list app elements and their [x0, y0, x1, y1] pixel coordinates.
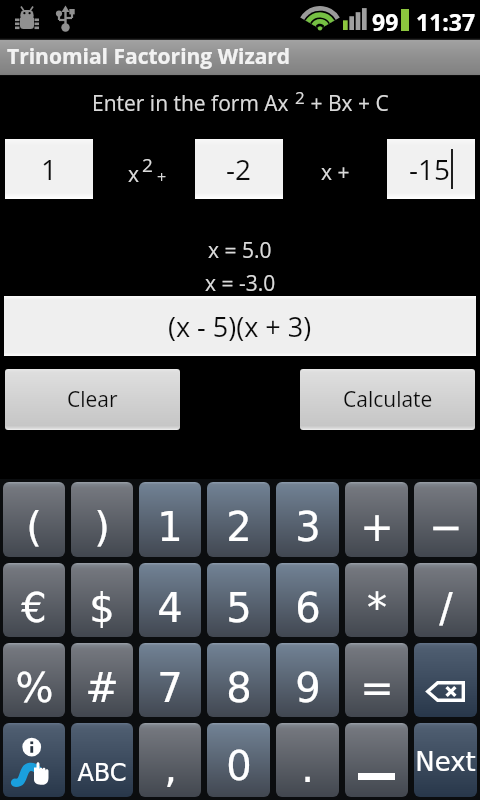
staticText: ) [94, 504, 110, 551]
staticText: % [15, 665, 54, 712]
button[interactable]: 0 [207, 723, 270, 797]
staticText: -2 [226, 150, 252, 188]
staticText: Next [415, 747, 476, 777]
staticText: 1 [157, 504, 183, 551]
staticText: 7 [157, 665, 183, 712]
button[interactable]: − [414, 482, 477, 557]
staticText: 2 [226, 504, 252, 551]
staticText: ( [26, 504, 42, 551]
button[interactable]: Next [414, 723, 477, 797]
button[interactable]: ( [3, 482, 65, 557]
staticText: $ [89, 585, 115, 632]
button[interactable]: % [3, 643, 65, 717]
button[interactable]: 1 [5, 139, 93, 199]
staticText: 4 [157, 585, 183, 632]
button[interactable]: 4 [139, 563, 201, 637]
button[interactable]: 5 [207, 563, 270, 637]
button[interactable]: ABC [71, 723, 133, 797]
button[interactable]: Clear [5, 369, 180, 430]
button[interactable]: * [345, 563, 408, 637]
button[interactable]: Backspace [414, 643, 477, 717]
staticText: . [301, 745, 314, 792]
button[interactable]: (x - 5)(x + 3) [4, 296, 476, 356]
staticText: Calculate [343, 385, 433, 414]
staticText: 0 [226, 743, 252, 790]
staticText: x = -3.0 [205, 269, 276, 298]
staticText: 11:37 [416, 6, 476, 37]
button[interactable]: -15 [387, 139, 475, 199]
staticText: x + [321, 158, 350, 187]
button[interactable]: ) [71, 482, 133, 557]
button[interactable]: 3 [276, 482, 339, 557]
button[interactable]: 6 [276, 563, 339, 637]
staticText: + [157, 166, 167, 188]
staticText: 2 [295, 86, 305, 109]
staticText: (x - 5)(x + 3) [168, 308, 312, 345]
staticText: # [85, 665, 119, 712]
button[interactable]: 9 [276, 643, 339, 717]
staticText: 8 [226, 665, 252, 712]
staticText: = [360, 665, 394, 712]
staticText: , [164, 745, 177, 792]
button[interactable]: / [414, 563, 477, 637]
staticText: 5 [226, 585, 252, 632]
button[interactable]: 8 [207, 643, 270, 717]
button[interactable]: = [345, 643, 408, 717]
button[interactable]: € [3, 563, 65, 637]
staticText: 9 [295, 665, 321, 712]
staticText: x [128, 160, 139, 189]
staticText: + [360, 504, 394, 551]
staticText: x = 5.0 [208, 236, 272, 265]
staticText: 6 [295, 585, 321, 632]
button[interactable]: -2 [195, 139, 283, 199]
button[interactable]: . [276, 723, 339, 797]
button[interactable]: $ [71, 563, 133, 637]
button[interactable]: , [139, 723, 201, 797]
staticText: / [439, 585, 453, 632]
button[interactable]: 7 [139, 643, 201, 717]
staticText: − [429, 504, 463, 551]
staticText: ABC [77, 759, 127, 787]
staticText: € [21, 585, 47, 632]
button[interactable]: + [345, 482, 408, 557]
button[interactable]: 2 [207, 482, 270, 557]
staticText: + Bx + C [305, 89, 389, 118]
staticText: 2 [142, 152, 153, 178]
button[interactable]: Calculate [300, 369, 475, 430]
staticText: * [367, 585, 387, 632]
button[interactable]: Change input method [3, 723, 65, 797]
button[interactable]: 1 [139, 482, 201, 557]
staticText: Trinomial Factoring Wizard [7, 42, 291, 71]
staticText: Enter in the form Ax [92, 89, 295, 118]
staticText: 99 [372, 6, 399, 37]
button[interactable]: # [71, 643, 133, 717]
staticText: 3 [295, 504, 321, 551]
staticText: Clear [67, 385, 118, 414]
button[interactable]: Space [345, 723, 408, 797]
staticText: 1 [41, 150, 58, 188]
staticText: -15 [409, 150, 451, 188]
